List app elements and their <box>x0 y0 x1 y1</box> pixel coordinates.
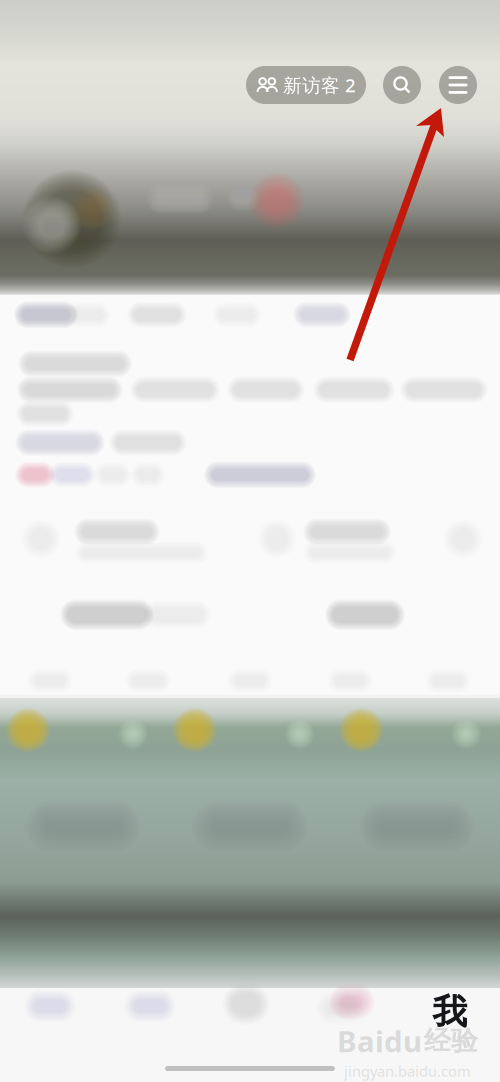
staticText: jingyan.baidu.com <box>344 1061 471 1081</box>
button[interactable]: Tab <box>0 988 100 1036</box>
staticText: 我 <box>432 991 467 1033</box>
button[interactable]: Search <box>383 66 421 104</box>
button[interactable]: 我 <box>400 988 500 1036</box>
staticText: 经验 <box>424 1024 478 1057</box>
button[interactable]: Tab <box>200 988 300 1036</box>
button[interactable]: 新访客 2 <box>246 66 366 104</box>
button[interactable]: Tab <box>100 988 200 1036</box>
staticText: 新访客 2 <box>283 73 356 97</box>
button[interactable]: Menu <box>439 66 477 104</box>
staticText: Baidu <box>337 1021 422 1060</box>
button[interactable]: Tab <box>300 988 400 1036</box>
